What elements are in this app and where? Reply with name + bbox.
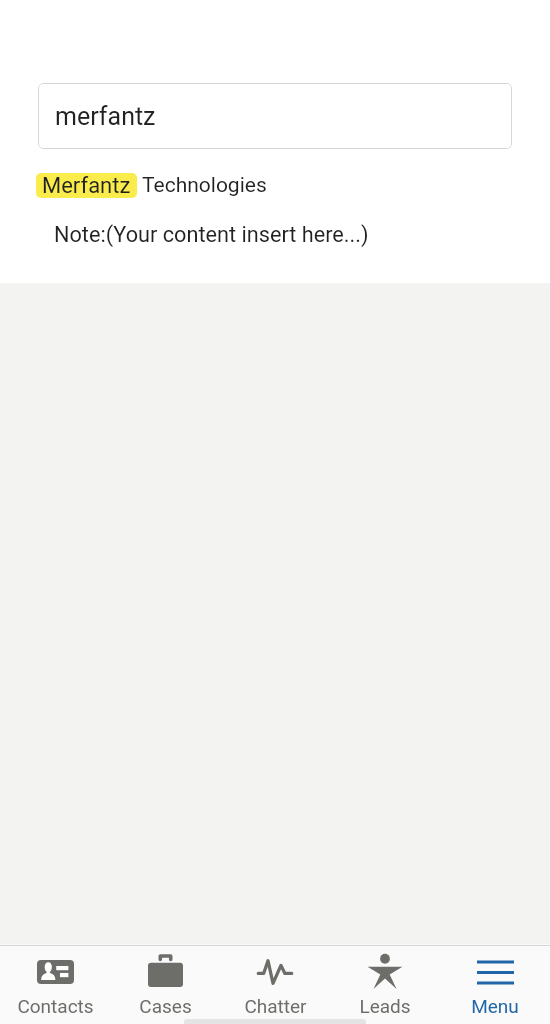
staticText: Cases (139, 995, 192, 1017)
staticText: Contacts (17, 995, 94, 1017)
staticText: Menu (471, 995, 519, 1017)
staticText: Merfantz (42, 173, 131, 198)
staticText: Note:(Your content insert here...) (54, 222, 369, 247)
staticText: merfantz (55, 102, 156, 131)
button[interactable]: Menu (440, 946, 550, 1024)
button[interactable]: Cases (110, 946, 220, 1024)
staticText: Technologies (142, 173, 267, 198)
button[interactable]: Chatter (220, 946, 330, 1024)
staticText: Leads (359, 995, 411, 1017)
button[interactable]: Contacts (0, 946, 110, 1024)
button[interactable]: Leads (330, 946, 440, 1024)
button[interactable]: Search field (38, 83, 512, 149)
staticText: Chatter (244, 995, 307, 1017)
